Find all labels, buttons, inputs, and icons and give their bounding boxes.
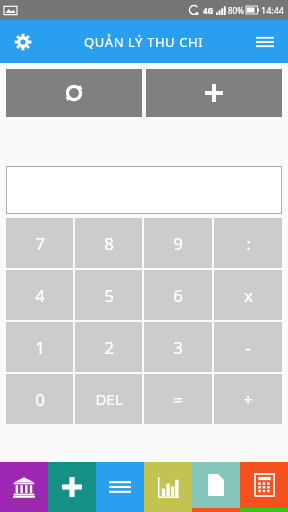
staticText: : [246, 232, 251, 255]
button[interactable]: 9 [144, 218, 212, 268]
button[interactable]: Add [48, 462, 96, 512]
button[interactable]: 7 [6, 218, 73, 268]
staticText: 80% [228, 5, 244, 16]
staticText: 8 [104, 232, 114, 255]
button[interactable]: 4 [6, 270, 73, 320]
button[interactable]: x [214, 270, 282, 320]
staticText: 6 [173, 284, 183, 307]
staticText: 1 [35, 336, 45, 359]
staticText: 14:44 [261, 4, 285, 16]
button[interactable]: 0 [6, 374, 73, 424]
button[interactable]: Accounts [0, 462, 48, 512]
button[interactable]: Reports [192, 462, 240, 512]
staticText: - [245, 336, 251, 359]
staticText: 7 [35, 232, 45, 255]
staticText: 4 [35, 284, 45, 307]
staticText: 2 [104, 336, 114, 359]
staticText: 5 [104, 284, 114, 307]
button[interactable]: List [96, 462, 144, 512]
staticText: + [243, 388, 253, 411]
button[interactable]: Statistics [144, 462, 192, 512]
button[interactable]: Settings [8, 27, 38, 57]
staticText: x [244, 284, 253, 307]
staticText: 0 [35, 388, 45, 411]
button[interactable]: Add [146, 69, 282, 117]
button[interactable]: 6 [144, 270, 212, 320]
staticText: = [173, 388, 183, 411]
button[interactable]: Refresh [6, 69, 142, 117]
button[interactable]: DEL [75, 374, 142, 424]
staticText: QUẢN LÝ THU CHI [84, 33, 204, 51]
button[interactable]: 1 [6, 322, 73, 372]
button[interactable]: 3 [144, 322, 212, 372]
button[interactable]: = [144, 374, 212, 424]
button[interactable]: 8 [75, 218, 142, 268]
staticText: 4G [203, 5, 214, 16]
button[interactable] [6, 166, 282, 214]
staticText: DEL [95, 389, 123, 409]
button[interactable]: Menu [250, 27, 280, 57]
button[interactable]: 2 [75, 322, 142, 372]
button[interactable]: Calculator [240, 462, 288, 512]
staticText: 9 [173, 232, 183, 255]
button[interactable]: + [214, 374, 282, 424]
button[interactable]: 5 [75, 270, 142, 320]
staticText: 3 [173, 336, 183, 359]
